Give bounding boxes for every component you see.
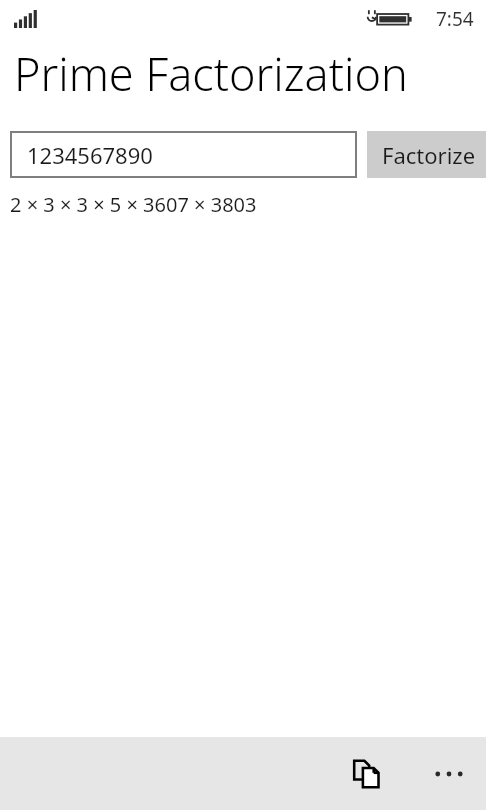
button[interactable]: Copy bbox=[336, 742, 400, 806]
button[interactable]: 1234567890 bbox=[10, 131, 357, 178]
staticText: Prime Factorization bbox=[14, 43, 408, 104]
button[interactable]: Factorize bbox=[367, 131, 486, 178]
button[interactable]: More options bbox=[420, 745, 478, 803]
staticText: 1234567890 bbox=[27, 140, 153, 170]
staticText: 2 × 3 × 3 × 5 × 3607 × 3803 bbox=[10, 191, 257, 218]
staticText: Factorize bbox=[382, 140, 476, 170]
staticText: 7:54 bbox=[436, 6, 474, 32]
